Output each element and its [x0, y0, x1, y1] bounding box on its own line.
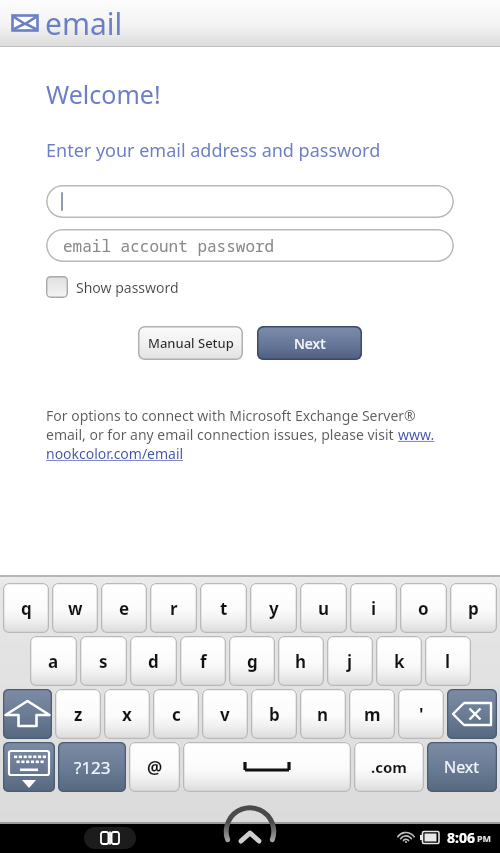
- staticText: For options to connect with Microsoft Ex…: [46, 406, 416, 425]
- staticText: p: [468, 597, 479, 620]
- staticText: v: [220, 703, 230, 726]
- staticText: t: [220, 597, 228, 620]
- staticText: PM: [477, 832, 492, 844]
- button[interactable]: c: [153, 689, 199, 739]
- button[interactable]: nookcolor.com/email: [46, 444, 184, 463]
- button[interactable]: d: [130, 636, 177, 686]
- button[interactable]: @: [129, 742, 180, 792]
- staticText: g: [247, 650, 258, 673]
- button[interactable]: l: [425, 636, 471, 686]
- button[interactable]: u: [300, 583, 347, 633]
- staticText: Show password: [76, 278, 179, 297]
- button[interactable]: h: [278, 636, 324, 686]
- staticText: Next: [444, 756, 480, 778]
- staticText: h: [295, 650, 307, 673]
- button[interactable]: r: [150, 583, 197, 633]
- staticText: a: [48, 650, 59, 673]
- staticText: x: [122, 703, 132, 726]
- button[interactable]: m: [349, 689, 395, 739]
- button[interactable]: Show password: [46, 274, 179, 300]
- button[interactable]: Backspace: [447, 689, 497, 739]
- staticText: email, or for any email connection issue…: [46, 425, 398, 444]
- staticText: b: [269, 703, 280, 726]
- button[interactable]: Next: [257, 326, 362, 360]
- button[interactable]: p: [450, 583, 497, 633]
- staticText: q: [21, 597, 32, 620]
- button[interactable]: n: [300, 689, 346, 739]
- button[interactable]: b: [251, 689, 297, 739]
- button[interactable]: Manual Setup: [138, 326, 243, 360]
- button[interactable]: Hide keyboard: [3, 742, 55, 792]
- staticText: r: [170, 597, 178, 620]
- staticText: n: [317, 703, 329, 726]
- button[interactable]: o: [400, 583, 447, 633]
- staticText: Welcome!: [46, 77, 161, 111]
- staticText: j: [347, 650, 353, 673]
- button[interactable]: f: [180, 636, 226, 686]
- button[interactable]: k: [376, 636, 422, 686]
- button[interactable]: .com: [354, 742, 424, 792]
- staticText: l: [445, 650, 451, 673]
- button[interactable]: i: [350, 583, 397, 633]
- button[interactable]: g: [229, 636, 275, 686]
- staticText: ?123: [74, 756, 111, 779]
- staticText: Manual Setup: [148, 334, 234, 352]
- button[interactable]: e: [101, 583, 147, 633]
- staticText: s: [99, 650, 108, 673]
- staticText: ': [419, 703, 424, 726]
- staticText: i: [371, 597, 377, 620]
- button[interactable]: ': [398, 689, 444, 739]
- staticText: .com: [371, 757, 407, 777]
- staticText: c: [172, 703, 181, 726]
- button[interactable]: v: [202, 689, 248, 739]
- button[interactable]: z: [55, 689, 101, 739]
- staticText: y: [269, 597, 279, 620]
- staticText: @: [147, 756, 163, 779]
- button[interactable]: j: [327, 636, 373, 686]
- button[interactable]: ?123: [58, 742, 126, 792]
- staticText: m: [364, 703, 381, 726]
- staticText: o: [418, 597, 429, 620]
- button[interactable]: www.: [398, 425, 435, 444]
- staticText: w: [68, 597, 83, 620]
- staticText: email account password: [63, 235, 275, 257]
- button[interactable]: s: [80, 636, 127, 686]
- staticText: d: [148, 650, 159, 673]
- staticText: Enter your email address and password: [46, 138, 381, 163]
- button[interactable]: a: [30, 636, 77, 686]
- button[interactable]: [46, 185, 454, 218]
- button[interactable]: [183, 742, 351, 792]
- staticText: e: [119, 597, 130, 620]
- staticText: u: [318, 597, 330, 620]
- staticText: z: [74, 703, 83, 726]
- staticText: k: [394, 650, 405, 673]
- staticText: Next: [294, 334, 326, 353]
- button[interactable]: Home: [221, 822, 279, 852]
- button[interactable]: w: [52, 583, 98, 633]
- button[interactable]: Shift: [3, 689, 52, 739]
- button[interactable]: x: [104, 689, 150, 739]
- staticText: f: [200, 650, 207, 673]
- button[interactable]: y: [250, 583, 297, 633]
- staticText: 8:06: [447, 828, 475, 847]
- staticText: email: [45, 3, 123, 44]
- button[interactable]: Next: [427, 742, 497, 792]
- button[interactable]: t: [200, 583, 247, 633]
- button[interactable]: Library: [84, 827, 136, 849]
- button[interactable]: email account password: [46, 229, 454, 262]
- button[interactable]: q: [3, 583, 49, 633]
